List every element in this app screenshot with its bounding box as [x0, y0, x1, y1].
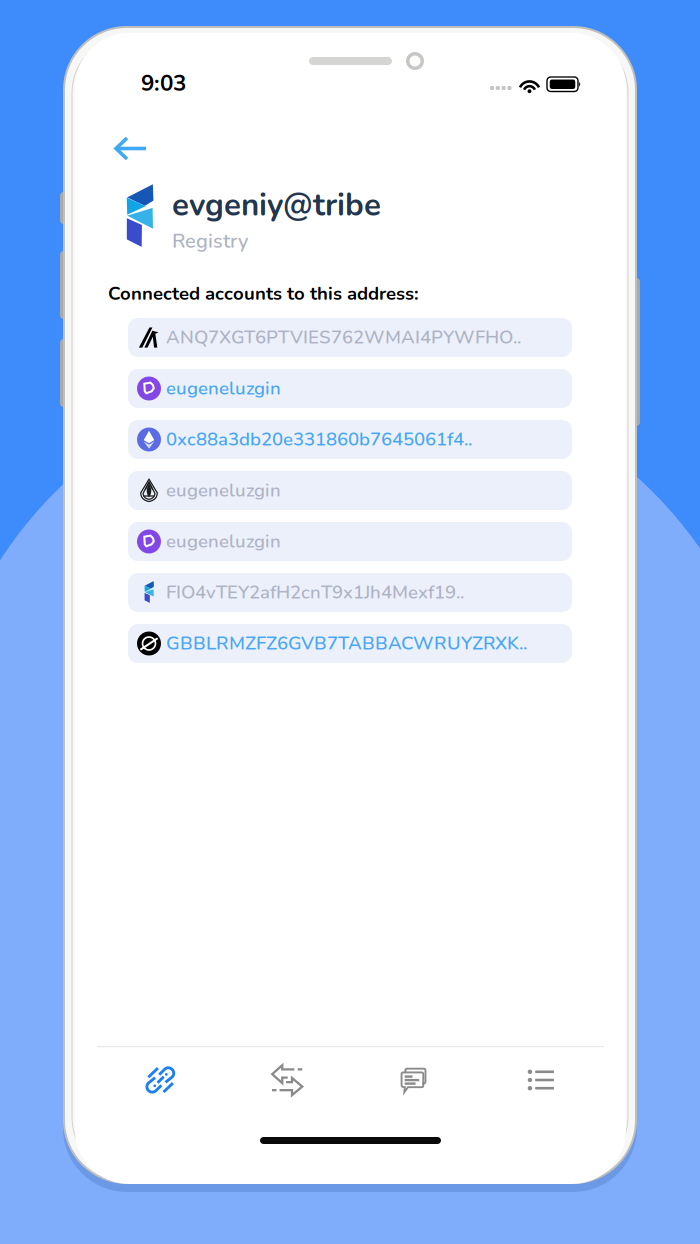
button[interactable]: 0xc88a3db20e331860b7645061f4.. [128, 420, 572, 459]
button[interactable]: eugeneluzgin [128, 471, 572, 510]
staticText: eugeneluzgin [166, 478, 281, 503]
staticText: evgeniy@tribe [172, 184, 381, 227]
staticText: Registry [172, 228, 248, 255]
button[interactable]: GBBLRMZFZ6GVB7TABBACWRUYZRXK.. [128, 624, 572, 663]
staticText: 0xc88a3db20e331860b7645061f4.. [166, 427, 472, 452]
button[interactable]: Links [97, 1056, 224, 1104]
staticText: eugeneluzgin [166, 529, 281, 554]
button[interactable]: Messages [350, 1056, 477, 1104]
staticText: ANQ7XGT6PTVIES762WMAI4PYWFHO.. [166, 325, 521, 350]
button[interactable]: List [477, 1056, 604, 1104]
button[interactable]: eugeneluzgin [128, 522, 572, 561]
staticText: Connected accounts to this address: [108, 281, 419, 306]
staticText: eugeneluzgin [166, 376, 281, 401]
staticText: 9:03 [141, 68, 186, 99]
button[interactable]: ANQ7XGT6PTVIES762WMAI4PYWFHO.. [128, 318, 572, 357]
staticText: FIO4vTEY2afH2cnT9x1Jh4Mexf19.. [166, 580, 464, 605]
button[interactable]: FIO4vTEY2afH2cnT9x1Jh4Mexf19.. [128, 573, 572, 612]
button[interactable]: Transfers [224, 1056, 351, 1104]
button[interactable]: eugeneluzgin [128, 369, 572, 408]
button[interactable]: Back [114, 136, 148, 161]
staticText: GBBLRMZFZ6GVB7TABBACWRUYZRXK.. [166, 631, 527, 656]
